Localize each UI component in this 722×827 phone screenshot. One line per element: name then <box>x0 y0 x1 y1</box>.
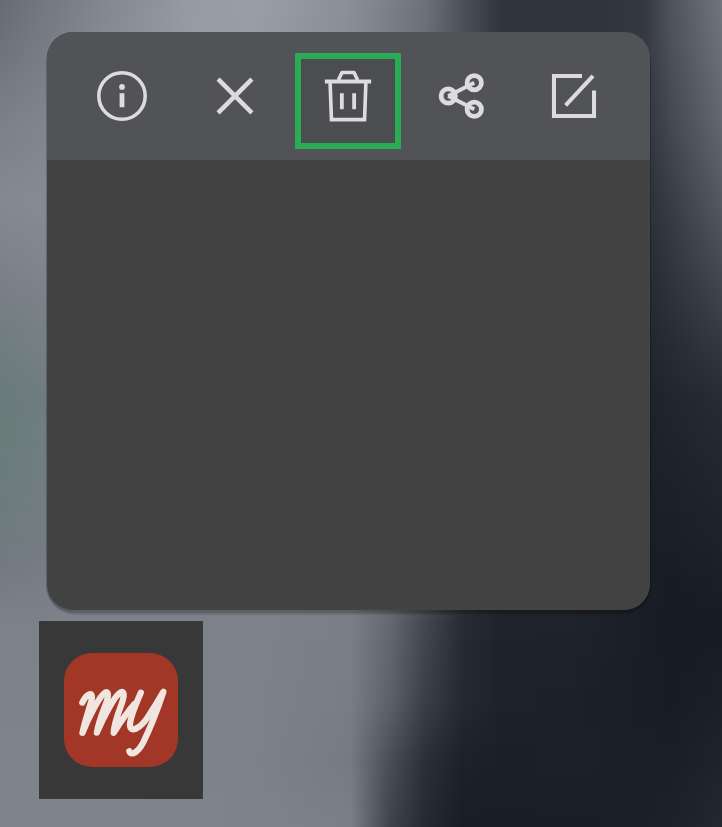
button[interactable]: Close <box>178 32 291 160</box>
button[interactable]: Share <box>404 32 517 160</box>
button[interactable]: Edit <box>517 32 630 160</box>
button[interactable]: MakeMyTrip <box>64 653 178 767</box>
button[interactable]: Delete <box>291 32 404 160</box>
button[interactable]: Info <box>65 32 178 160</box>
